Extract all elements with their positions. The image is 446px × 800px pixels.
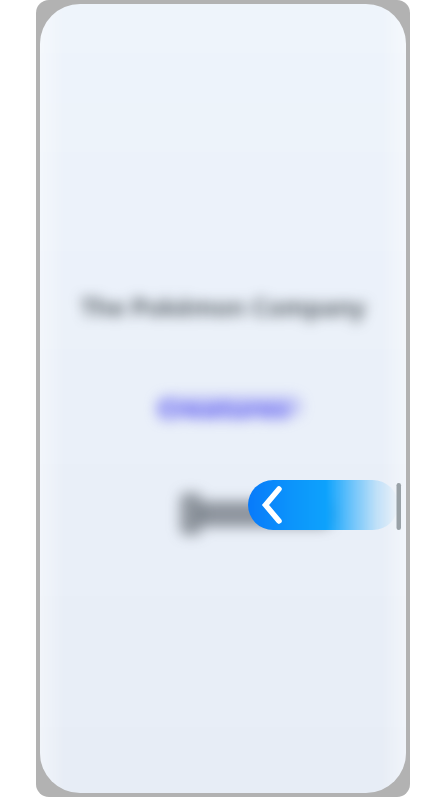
button[interactable]	[248, 480, 398, 530]
staticText: Creatures	[157, 390, 289, 426]
staticText: The Pokémon Company	[81, 290, 366, 323]
